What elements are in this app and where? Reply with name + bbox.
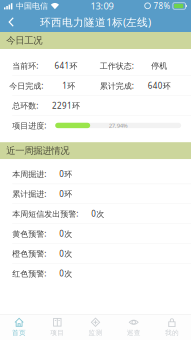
staticText: 红色预警:: [12, 268, 46, 279]
staticText: 累计掘进:: [12, 188, 46, 199]
staticText: 巡查: [127, 328, 141, 337]
staticText: 0环: [59, 168, 72, 179]
staticText: 停机: [151, 61, 167, 71]
staticText: 本周掘进:: [12, 168, 46, 179]
staticText: 0次: [91, 208, 104, 219]
button[interactable]: 首页: [0, 314, 38, 340]
staticText: 2291环: [52, 100, 80, 111]
staticText: 640环: [148, 80, 171, 91]
staticText: 累计完成:: [100, 80, 134, 91]
staticText: 项目: [50, 328, 64, 337]
staticText: 监测: [88, 328, 102, 337]
staticText: 总环数:: [12, 100, 38, 111]
staticText: 0次: [59, 228, 72, 239]
staticText: 当前环:: [12, 60, 38, 71]
staticText: 641环: [54, 60, 77, 71]
staticText: 中国电信: [16, 1, 48, 11]
staticText: 0环: [59, 188, 72, 199]
staticText: 首页: [12, 328, 26, 337]
staticText: 今日完成:: [9, 80, 43, 91]
staticText: 近一周掘进情况: [6, 145, 69, 157]
staticText: 黄色预警:: [12, 228, 46, 239]
staticText: 0次: [59, 268, 72, 279]
staticText: 工作状态:: [100, 60, 134, 71]
staticText: 1环: [62, 80, 75, 91]
staticText: 13:09: [90, 0, 113, 12]
staticText: 项目进度:: [12, 120, 46, 131]
staticText: 27.94%: [109, 121, 128, 130]
staticText: 78%: [153, 1, 170, 11]
staticText: 我的: [165, 328, 179, 337]
staticText: 本周短信发出预警:: [12, 208, 78, 219]
staticText: 0次: [59, 248, 72, 259]
button[interactable]: 巡查: [115, 314, 153, 340]
button[interactable]: 我的: [153, 314, 191, 340]
staticText: 今日工况: [6, 35, 42, 46]
button[interactable]: 监测: [76, 314, 115, 340]
button[interactable]: 返回: [0, 12, 24, 32]
staticText: 橙色预警:: [12, 248, 46, 259]
staticText: 环西电力隧道1标(左线): [40, 15, 151, 29]
button[interactable]: 项目: [38, 314, 76, 340]
